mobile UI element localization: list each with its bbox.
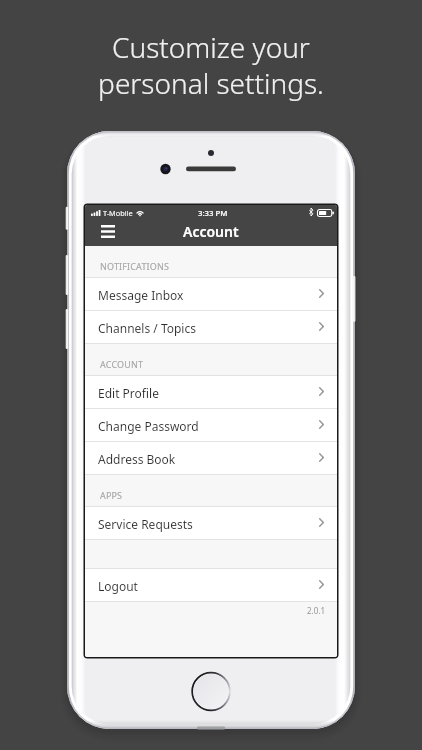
- button[interactable]: Service Requests: [85, 507, 337, 540]
- staticText: Address Book: [98, 451, 176, 467]
- staticText: NOTIFICATIONS: [100, 260, 170, 272]
- staticText: T-Mobile: [103, 208, 133, 218]
- button[interactable]: Edit Profile: [85, 376, 337, 409]
- staticText: Edit Profile: [98, 385, 159, 401]
- button[interactable]: Change Password: [85, 409, 337, 442]
- button[interactable]: Message Inbox: [85, 278, 337, 311]
- staticText: Customize your personal settings.: [0, 28, 422, 102]
- button[interactable]: Address Book: [85, 442, 337, 475]
- button[interactable]: Menu: [94, 219, 122, 244]
- staticText: ACCOUNT: [100, 358, 144, 370]
- staticText: Logout: [98, 578, 138, 594]
- staticText: APPS: [100, 489, 123, 501]
- staticText: 2.0.1: [307, 605, 326, 616]
- staticText: Service Requests: [98, 516, 193, 532]
- staticText: Account: [183, 222, 239, 241]
- button[interactable]: Channels / Topics: [85, 311, 337, 344]
- staticText: Message Inbox: [98, 287, 184, 303]
- staticText: Change Password: [98, 418, 199, 434]
- staticText: 3:33 PM: [198, 208, 228, 219]
- button[interactable]: Logout: [85, 569, 337, 602]
- staticText: Channels / Topics: [98, 320, 196, 336]
